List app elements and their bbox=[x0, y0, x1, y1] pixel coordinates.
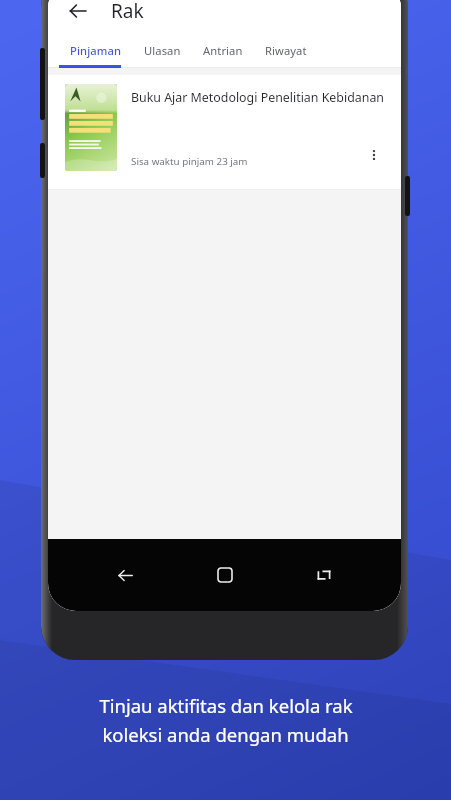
button[interactable]: Recent apps bbox=[302, 553, 346, 597]
button[interactable]: Back bbox=[103, 553, 147, 597]
button[interactable]: More options bbox=[355, 136, 393, 174]
staticText: Ulasan bbox=[144, 43, 181, 58]
button[interactable]: Home bbox=[203, 553, 247, 597]
staticText: Tinjau aktifitas dan kelola rak bbox=[99, 693, 353, 718]
button[interactable]: Ulasan bbox=[133, 32, 192, 68]
button[interactable]: Antrian bbox=[192, 32, 254, 68]
staticText: Sisa waktu pinjam 23 jam bbox=[131, 155, 248, 168]
button[interactable]: Back bbox=[58, 0, 98, 31]
staticText: Pinjaman bbox=[70, 43, 122, 58]
button[interactable]: Riwayat bbox=[254, 32, 318, 68]
staticText: Rak bbox=[111, 0, 144, 24]
button[interactable]: Buku Ajar Metodologi Penelitian Kebidana… bbox=[48, 75, 401, 190]
staticText: koleksi anda dengan mudah bbox=[102, 722, 349, 747]
staticText: Antrian bbox=[203, 43, 243, 58]
staticText: Riwayat bbox=[265, 43, 307, 58]
button[interactable]: Pinjaman bbox=[59, 32, 133, 68]
staticText: Buku Ajar Metodologi Penelitian Kebidana… bbox=[131, 89, 384, 106]
